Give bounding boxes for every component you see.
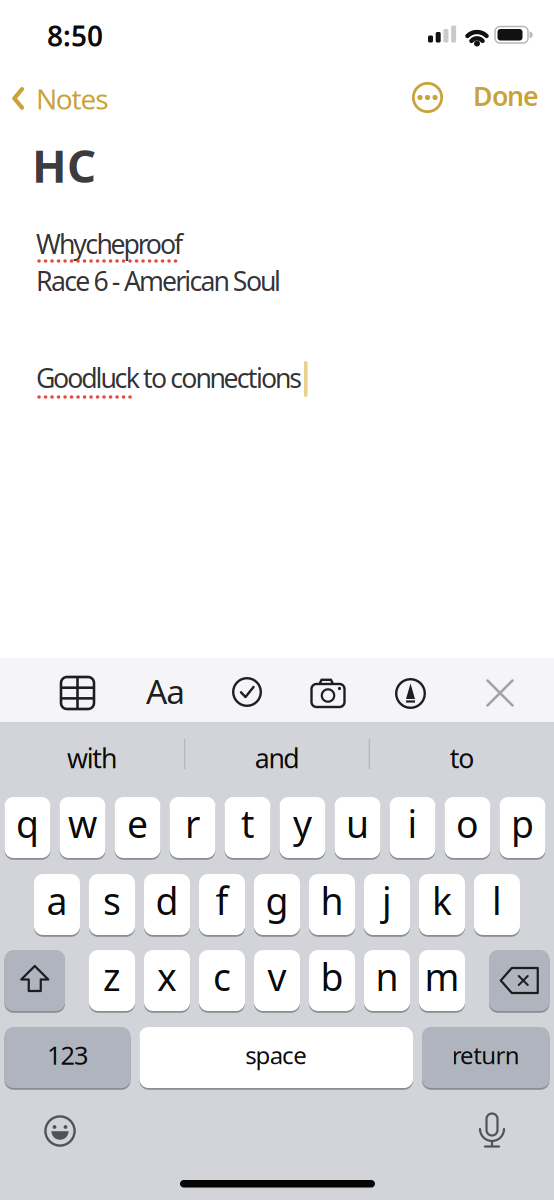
button[interactable]: Shift [4,950,65,1011]
button[interactable]: k [419,874,465,935]
button[interactable]: b [309,950,355,1011]
button[interactable]: Delete [489,950,549,1011]
staticText: Goodluck to connections [36,360,302,395]
staticText: h [320,876,343,925]
button[interactable]: n [364,950,410,1011]
staticText: l [492,876,502,925]
staticText: o [456,799,479,848]
staticText: t [241,799,254,848]
staticText: j [382,876,392,925]
staticText: Whycheproof [36,226,183,261]
button[interactable]: p [499,797,545,858]
staticText: x [157,952,177,1001]
staticText: e [127,799,148,848]
staticText: w [68,799,97,848]
button[interactable]: Dismiss keyboard [486,679,514,707]
staticText: Done [473,78,539,113]
button[interactable]: o [444,797,490,858]
button[interactable]: u [334,797,380,858]
staticText: Notes [36,80,108,117]
button[interactable]: s [89,874,135,935]
staticText: z [103,952,121,1001]
button[interactable]: q [4,797,50,858]
staticText: 8:50 [47,17,103,54]
staticText: u [346,799,369,848]
button[interactable]: space [139,1027,413,1088]
button[interactable]: c [199,950,245,1011]
button[interactable]: Emoji [44,1115,76,1147]
staticText: Aa [146,669,185,713]
button[interactable]: Insert table [59,675,96,711]
button[interactable]: i [389,797,435,858]
staticText: return [452,1039,520,1071]
button[interactable]: y [279,797,325,858]
staticText: m [424,952,459,1001]
button[interactable]: Insert photo [310,678,346,708]
staticText: 123 [47,1038,88,1072]
button[interactable]: Format [146,669,185,713]
staticText: v [267,952,286,1001]
staticText: q [16,799,39,848]
staticText: p [511,799,534,848]
staticText: i [407,799,417,848]
button[interactable]: and [192,729,362,787]
button[interactable]: t [224,797,270,858]
button[interactable]: More options [412,82,443,113]
button[interactable]: Markup [395,678,426,709]
button[interactable]: z [89,950,135,1011]
staticText: space [245,1039,307,1071]
button[interactable]: 123 [4,1027,130,1088]
button[interactable]: g [254,874,300,935]
staticText: f [215,876,228,925]
staticText: HC [32,135,96,195]
button[interactable]: return [422,1027,549,1088]
button[interactable]: Checklist [232,677,262,707]
staticText: and [255,740,299,776]
button[interactable]: f [199,874,245,935]
staticText: Race 6 - American Soul [36,263,281,298]
button[interactable]: m [419,950,465,1011]
button[interactable]: to [377,729,547,787]
staticText: b [320,952,343,1001]
button[interactable]: e [114,797,160,858]
button[interactable]: r [169,797,215,858]
staticText: r [185,799,200,848]
staticText: y [293,799,312,848]
staticText: g [265,876,288,925]
button[interactable]: h [309,874,355,935]
staticText: c [213,952,231,1001]
button[interactable]: w [59,797,105,858]
staticText: n [375,952,398,1001]
staticText: with [67,740,117,776]
button[interactable]: x [144,950,190,1011]
staticText: k [432,876,452,925]
button[interactable]: Dictation [479,1112,505,1148]
button[interactable]: d [144,874,190,935]
button[interactable]: v [254,950,300,1011]
button[interactable]: l [474,874,520,935]
staticText: d [155,876,178,925]
button[interactable]: j [364,874,410,935]
button[interactable]: with [7,729,177,787]
staticText: to [450,740,474,776]
button[interactable]: Back to Notes [12,80,108,117]
button[interactable]: a [34,874,80,935]
button[interactable]: Done [473,78,539,113]
staticText: s [103,876,121,925]
staticText: a [46,876,67,925]
